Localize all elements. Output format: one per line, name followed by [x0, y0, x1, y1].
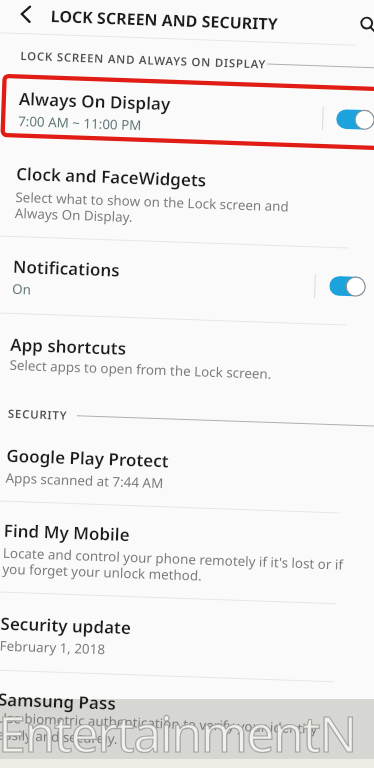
- staticText: Always On Display: [18, 87, 171, 115]
- staticText: Notifications: [13, 255, 120, 282]
- button[interactable]: Google Play Protect: [0, 424, 342, 512]
- staticText: Security update: [0, 612, 132, 639]
- button[interactable]: Search: [351, 7, 374, 38]
- button[interactable]: Find My Mobile: [0, 500, 340, 603]
- staticText: SECURITY: [8, 406, 68, 424]
- staticText: On: [12, 280, 31, 298]
- staticText: Apps scanned at 7:44 AM: [5, 469, 164, 492]
- staticText: Select what to show on the Lock screen a…: [15, 188, 290, 231]
- staticText: 7:00 AM ~ 11:00 PM: [18, 112, 142, 134]
- button[interactable]: App shortcuts: [0, 312, 346, 395]
- staticText: App shortcuts: [10, 333, 127, 360]
- staticText: Google Play Protect: [6, 444, 170, 472]
- staticText: February 1, 2018: [0, 637, 106, 658]
- button[interactable]: Toggle: [336, 102, 374, 137]
- button[interactable]: Always On Display: [0, 37, 356, 154]
- button[interactable]: Toggle: [329, 269, 366, 304]
- staticText: LOCK SCREEN AND SECURITY: [50, 5, 279, 35]
- staticText: Select apps to open from the Lock screen…: [9, 356, 272, 383]
- staticText: Samsung Pass: [0, 688, 116, 715]
- staticText: Find My Mobile: [3, 519, 130, 546]
- button[interactable]: Clock and FaceWidgets: [0, 141, 352, 248]
- button[interactable]: Security update: [0, 591, 336, 680]
- staticText: EntertainmentNews: [0, 699, 372, 768]
- staticText: Use biometric authentication to verify y…: [0, 709, 318, 755]
- staticText: Locate and control your phone remotely i…: [2, 544, 344, 590]
- staticText: LOCK SCREEN AND ALWAYS ON DISPLAY: [20, 48, 266, 73]
- button[interactable]: Notifications: [0, 235, 349, 324]
- staticText: Clock and FaceWidgets: [16, 162, 207, 192]
- staticText: EntertainmentNews: [0, 699, 372, 768]
- button[interactable]: Samsung Pass: [0, 668, 334, 765]
- button[interactable]: Back: [8, 0, 43, 32]
